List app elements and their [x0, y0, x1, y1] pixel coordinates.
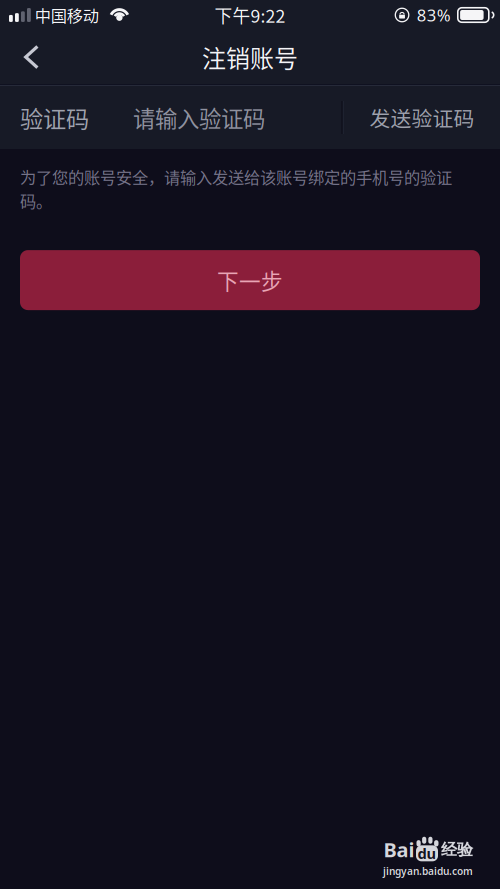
staticText: du: [417, 843, 436, 863]
button[interactable]: 下一步: [20, 250, 480, 310]
staticText: 83%: [417, 4, 451, 26]
staticText: 中国移动: [35, 3, 99, 27]
staticText: 下午9:22: [214, 2, 285, 28]
staticText: 注销账号: [202, 40, 298, 74]
staticText: 经验: [441, 839, 473, 860]
button[interactable]: Back: [0, 30, 55, 84]
staticText: 为了您的账号安全，请输入发送给该账号绑定的手机号的验证码。: [20, 165, 452, 212]
staticText: 请输入验证码: [133, 101, 265, 134]
staticText: Bai: [383, 836, 414, 863]
staticText: 发送验证码: [369, 102, 474, 132]
staticText: jingyan.baidu.com: [383, 864, 473, 878]
staticText: 验证码: [20, 101, 89, 134]
staticText: 下一步: [217, 264, 283, 296]
button[interactable]: 发送验证码: [344, 86, 500, 149]
